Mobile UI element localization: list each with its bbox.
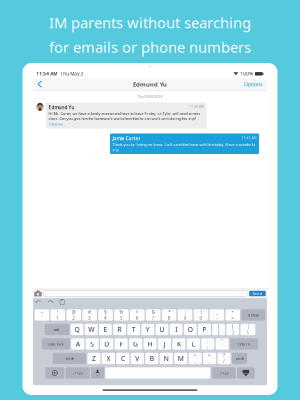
button[interactable]: Y: [141, 324, 154, 335]
button[interactable]: ": [216, 338, 229, 350]
staticText: 3: [88, 315, 91, 321]
button[interactable]: shift: [232, 353, 247, 364]
button[interactable]: E: [99, 324, 112, 335]
button[interactable]: tab: [45, 324, 69, 335]
staticText: {: [218, 323, 220, 330]
staticText: 11:48 AM: [189, 104, 204, 109]
button[interactable]: ~: [35, 309, 49, 321]
staticText: .?123: [73, 370, 82, 376]
button[interactable]: !: [50, 309, 65, 321]
button[interactable]: Send: [249, 291, 266, 296]
button[interactable]: U: [156, 324, 168, 335]
button[interactable]: J: [158, 338, 171, 350]
button[interactable]: %: [114, 309, 129, 321]
button[interactable]: A: [71, 338, 84, 350]
button[interactable]: N: [160, 353, 173, 364]
button[interactable]: <: [189, 353, 202, 364]
button[interactable]: Globe: [45, 367, 64, 379]
button[interactable]: M: [174, 353, 187, 364]
button[interactable]: Redo: [48, 299, 53, 305]
button[interactable]: delete: [241, 309, 265, 321]
staticText: IM parents without searching: [49, 12, 251, 32]
button[interactable]: T: [127, 324, 140, 335]
button[interactable]: O: [184, 324, 197, 335]
button[interactable]: Paste: [60, 299, 65, 305]
staticText: shift: [235, 356, 243, 361]
staticText: .: [209, 358, 210, 364]
button[interactable]: [105, 367, 210, 379]
button[interactable]: H: [143, 338, 157, 350]
staticText: Options: [244, 80, 263, 88]
button[interactable]: ?: [217, 353, 231, 364]
button[interactable]: ): [194, 309, 208, 321]
button[interactable]: V: [131, 353, 144, 364]
button[interactable]: Camera: [34, 290, 42, 297]
button[interactable]: .?123: [212, 367, 236, 379]
button[interactable]: |: [240, 324, 255, 335]
staticText: tab: [54, 327, 60, 332]
button[interactable]: Translate: [48, 122, 63, 127]
staticText: ': [222, 344, 223, 350]
button[interactable]: {: [212, 324, 225, 335]
button[interactable]: Q: [71, 324, 83, 335]
button[interactable]: Hide Keyboard: [237, 367, 255, 379]
button[interactable]: :: [201, 338, 214, 350]
button[interactable]: B: [145, 353, 158, 364]
staticText: Hi Ms. Carter, we have a family reunion …: [48, 111, 200, 121]
button[interactable]: R: [113, 324, 126, 335]
button[interactable]: #: [82, 309, 97, 321]
staticText: Jamie Carter: [112, 135, 140, 142]
button[interactable]: $: [98, 309, 113, 321]
staticText: 6: [136, 315, 139, 321]
button[interactable]: &: [146, 309, 160, 321]
button[interactable]: L: [187, 338, 200, 350]
staticText: 4: [104, 315, 107, 321]
button[interactable]: C: [116, 353, 129, 364]
button[interactable]: Dictate: [91, 367, 104, 379]
button[interactable]: Z: [87, 353, 100, 364]
button[interactable]: _: [210, 309, 224, 321]
staticText: ": [221, 338, 223, 344]
button[interactable]: *: [162, 309, 176, 321]
button[interactable]: +: [225, 309, 240, 321]
staticText: Edmund Yu: [48, 104, 74, 111]
staticText: caps lock: [48, 341, 64, 347]
staticText: M: [178, 354, 184, 363]
staticText: L: [192, 339, 195, 348]
button[interactable]: >: [203, 353, 216, 364]
button[interactable]: P: [198, 324, 211, 335]
staticText: 11:49 AM: [242, 136, 257, 140]
staticText: T: [132, 325, 136, 334]
staticText: ~: [40, 309, 43, 315]
button[interactable]: W: [85, 324, 98, 335]
staticText: ]: [232, 329, 233, 335]
button[interactable]: G: [129, 338, 142, 350]
button[interactable]: .?123: [66, 367, 90, 379]
staticText: Q: [75, 325, 80, 334]
staticText: 8: [168, 315, 171, 321]
staticText: (: [184, 309, 185, 315]
staticText: <: [194, 352, 197, 359]
staticText: ,: [195, 358, 196, 364]
button[interactable]: (: [178, 309, 192, 321]
button[interactable]: Options: [241, 79, 266, 89]
staticText: W: [88, 325, 94, 334]
button[interactable]: shift: [53, 353, 86, 364]
button[interactable]: Undo: [36, 299, 41, 305]
button[interactable]: K: [172, 338, 185, 350]
button[interactable]: @: [66, 309, 81, 321]
staticText: %: [119, 309, 123, 315]
staticText: O: [188, 325, 193, 334]
staticText: @: [72, 309, 76, 315]
button[interactable]: S: [86, 338, 99, 350]
button[interactable]: return: [230, 338, 258, 350]
button[interactable]: caps lock: [42, 338, 70, 350]
button[interactable]: ^: [130, 309, 145, 321]
button[interactable]: I: [170, 324, 182, 335]
button[interactable]: X: [102, 353, 115, 364]
button[interactable]: D: [100, 338, 113, 350]
staticText: 9: [183, 315, 186, 321]
button[interactable]: }: [226, 324, 239, 335]
button[interactable]: F: [115, 338, 128, 350]
button[interactable]: Back: [34, 79, 46, 89]
